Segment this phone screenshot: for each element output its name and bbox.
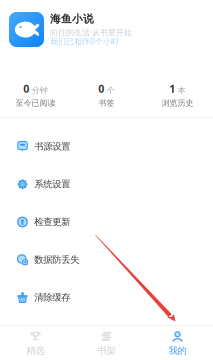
staticText: 精选 (26, 345, 44, 356)
staticText: 我的 (168, 345, 186, 356)
staticText: 检查更新 (34, 216, 70, 228)
staticText: 系统设置 (34, 178, 70, 190)
staticText: 向往的生活·从书里开始 (50, 27, 132, 38)
staticText: 0 (98, 81, 104, 96)
button[interactable]: 数据防丢失 (0, 241, 213, 279)
button[interactable]: 书架 (71, 325, 142, 360)
staticText: 至今已阅读 (15, 98, 55, 108)
button[interactable]: 我的 (142, 325, 213, 360)
staticText: 个 (107, 85, 115, 95)
staticText: 本 (178, 85, 186, 95)
staticText: 0 (23, 81, 29, 96)
staticText: 海鱼小说 (50, 12, 94, 26)
button[interactable]: 检查更新 (0, 203, 213, 241)
staticText: 浏览历史 (161, 98, 193, 108)
staticText: 清除缓存 (34, 292, 70, 303)
staticText: 分钟 (32, 85, 48, 95)
staticText: 书架 (97, 345, 115, 356)
button[interactable]: 清除缓存 (0, 279, 213, 316)
button[interactable]: 书源设置 (0, 128, 213, 165)
staticText: 数据防丢失 (34, 254, 79, 265)
staticText: 书签 (98, 98, 114, 108)
staticText: 1 (169, 81, 175, 96)
button[interactable]: 精选 (0, 325, 71, 360)
staticText: 书源设置 (34, 141, 70, 152)
staticText: 我们已相伴0个小时 (50, 36, 119, 47)
button[interactable]: 系统设置 (0, 165, 213, 203)
